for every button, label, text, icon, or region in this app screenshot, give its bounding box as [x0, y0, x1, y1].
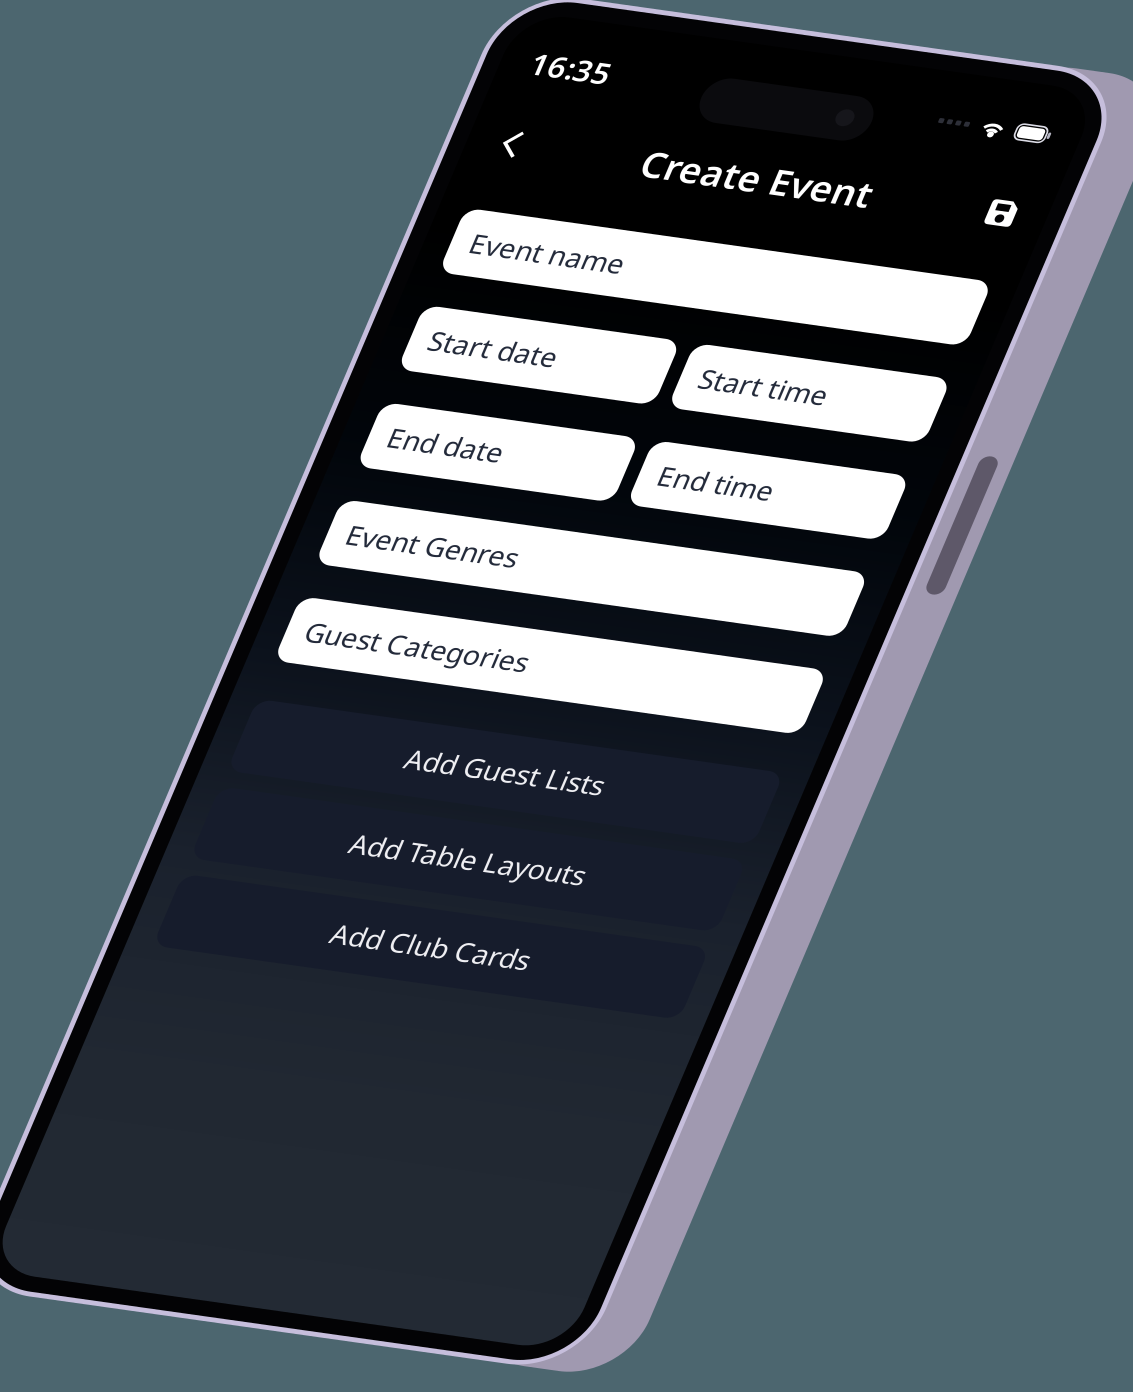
- button[interactable]: End time: [320, 442, 579, 512]
- button[interactable]: Guest Categories: [47, 653, 579, 723]
- staticText: End time: [339, 458, 455, 496]
- button[interactable]: Event Genres: [47, 547, 579, 617]
- button[interactable]: Add Table Layouts: [47, 859, 579, 937]
- button[interactable]: Add Club Cards: [47, 954, 579, 1032]
- button[interactable]: Event name: [47, 231, 579, 301]
- button[interactable]: Start time: [320, 336, 579, 406]
- staticText: Start time: [339, 353, 468, 390]
- staticText: Guest Categories: [66, 669, 291, 707]
- button[interactable]: End date: [47, 442, 306, 512]
- button[interactable]: Add Guest Lists: [47, 764, 579, 842]
